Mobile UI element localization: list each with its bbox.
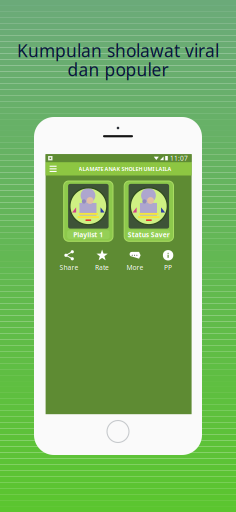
- button[interactable]: Menu: [46, 162, 61, 175]
- button[interactable]: PP: [152, 250, 185, 272]
- button[interactable]: Rate: [86, 250, 119, 272]
- staticText: Kumpulan sholawat viral: [17, 39, 219, 62]
- button[interactable]: Share: [53, 250, 86, 272]
- button[interactable]: Playlist 1: [64, 181, 113, 241]
- staticText: Rate: [95, 263, 109, 272]
- button[interactable]: More: [119, 250, 152, 272]
- staticText: More: [127, 263, 144, 272]
- staticText: dan populer: [67, 58, 168, 81]
- staticText: 11:07: [170, 154, 188, 163]
- button[interactable]: Status Saver: [124, 181, 173, 241]
- staticText: Share: [60, 263, 79, 272]
- staticText: Playlist 1: [73, 230, 103, 239]
- staticText: PP: [164, 263, 172, 272]
- staticText: Status Saver: [128, 230, 170, 239]
- staticText: ALAMATE ANAK SHOLEH UMI LAILA: [79, 165, 172, 172]
